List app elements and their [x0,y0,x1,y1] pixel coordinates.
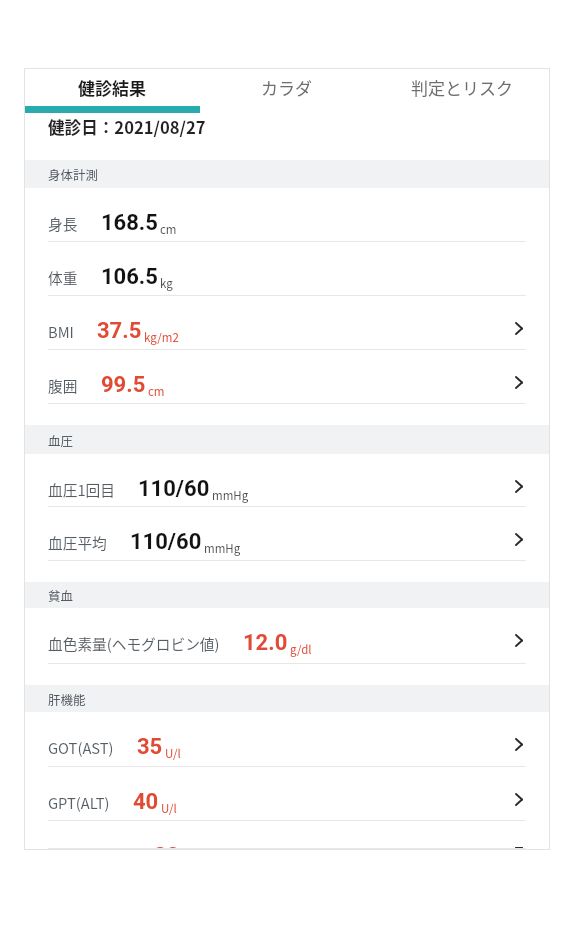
staticText: GOT(AST) [48,737,114,758]
button[interactable]: BMI [25,296,549,350]
button[interactable]: 血圧1回目 [25,454,549,507]
staticText: kg/m2 [144,329,179,346]
button[interactable]: 腹囲 [25,350,549,404]
staticText: cm [160,221,177,238]
staticText: mmHg [212,487,249,504]
button[interactable]: 体重 [25,242,549,296]
staticText: 腹囲 [48,375,78,396]
staticText: g/dl [290,641,312,658]
button[interactable]: 血色素量(ヘモグロビン値) [25,608,549,664]
staticText: 判定とリスク [411,75,513,100]
staticText: 30 [154,843,180,849]
other: 詳細 [515,376,523,389]
button[interactable]: 血圧平均 [25,507,549,561]
staticText: 貧血 [48,586,74,604]
staticText: 血色素量(ヘモグロビン値) [48,633,220,654]
other: 詳細 [515,322,523,335]
staticText: 健診結果 [78,75,146,100]
other: 詳細 [515,634,523,647]
staticText: 99.5 [101,372,146,398]
staticText: 12.0 [243,630,288,656]
button[interactable]: GPT(ALT) [25,767,549,821]
other: 詳細 [515,847,523,849]
button[interactable]: 健診結果 [25,69,199,106]
staticText: 身体計測 [48,165,99,183]
staticText: 110/60 [138,476,210,502]
staticText: 身長 [48,213,78,234]
staticText: mmHg [204,540,241,557]
staticText: 35 [137,734,163,760]
staticText: γ-GT(γ-GTP) [48,846,131,849]
button[interactable]: GOT(AST) [25,712,549,767]
other: 詳細 [515,533,523,546]
staticText: 168.5 [101,210,158,236]
staticText: 血圧1回目 [48,479,115,500]
staticText: 37.5 [97,318,142,344]
staticText: kg [160,275,173,292]
button[interactable]: 身長 [25,188,549,242]
staticText: 血圧平均 [48,532,107,553]
staticText: cm [148,383,165,400]
other: 詳細 [515,793,523,806]
button[interactable]: γ-GT(γ-GTP) [25,821,549,849]
other: 詳細 [515,480,523,493]
other: 詳細 [515,738,523,751]
staticText: BMI [48,321,74,342]
staticText: 40 [133,789,159,815]
staticText: 110/60 [130,529,202,555]
staticText: カラダ [261,75,312,100]
button[interactable]: 判定とリスク [374,69,549,106]
staticText: 血圧 [48,431,74,449]
staticText: 体重 [48,267,78,288]
staticText: U/l [165,745,181,762]
button[interactable]: カラダ [199,69,374,106]
staticText: U/l [161,800,177,817]
staticText: 健診日：2021/08/27 [48,115,206,139]
staticText: GPT(ALT) [48,792,110,813]
staticText: 肝機能 [48,690,86,708]
staticText: 106.5 [101,264,158,290]
